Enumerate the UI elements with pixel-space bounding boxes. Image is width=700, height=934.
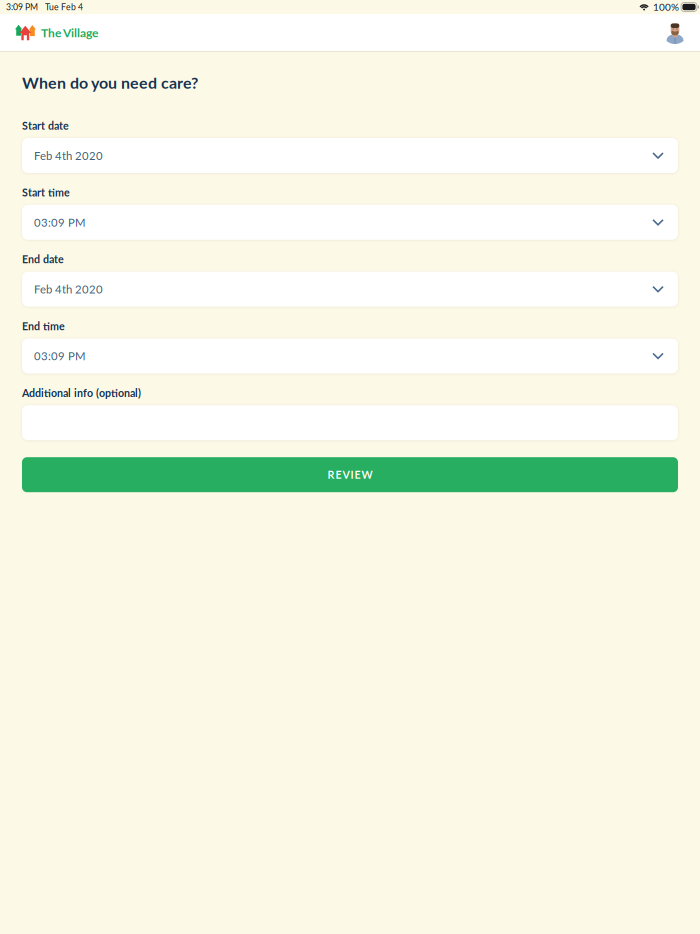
button[interactable]: 03:09 PM [22, 338, 678, 373]
staticText: 03:09 PM [34, 215, 86, 229]
staticText: Feb 4th 2020 [34, 149, 103, 162]
staticText: When do you need care? [22, 73, 198, 92]
staticText: End date [22, 253, 64, 266]
staticText: Start time [22, 186, 70, 199]
button[interactable]: 03:09 PM [22, 205, 678, 240]
staticText: R E V I E W [327, 468, 372, 481]
staticText: 3:09 PM [6, 2, 38, 12]
staticText: Additional info (optional) [22, 386, 141, 399]
staticText: 03:09 PM [34, 349, 86, 363]
staticText: Tue Feb 4 [45, 2, 83, 12]
staticText: Start date [22, 119, 69, 132]
staticText: The Village [41, 25, 98, 40]
staticText: End time [22, 320, 65, 332]
button[interactable]: Feb 4th 2020 [22, 138, 678, 173]
button[interactable]: Feb 4th 2020 [22, 272, 678, 307]
staticText: 100% [653, 1, 679, 13]
button[interactable]: R E V I E W [22, 457, 678, 492]
button[interactable]: Account [664, 21, 686, 43]
button[interactable]: The Village [15, 21, 98, 44]
staticText: Feb 4th 2020 [34, 282, 103, 296]
